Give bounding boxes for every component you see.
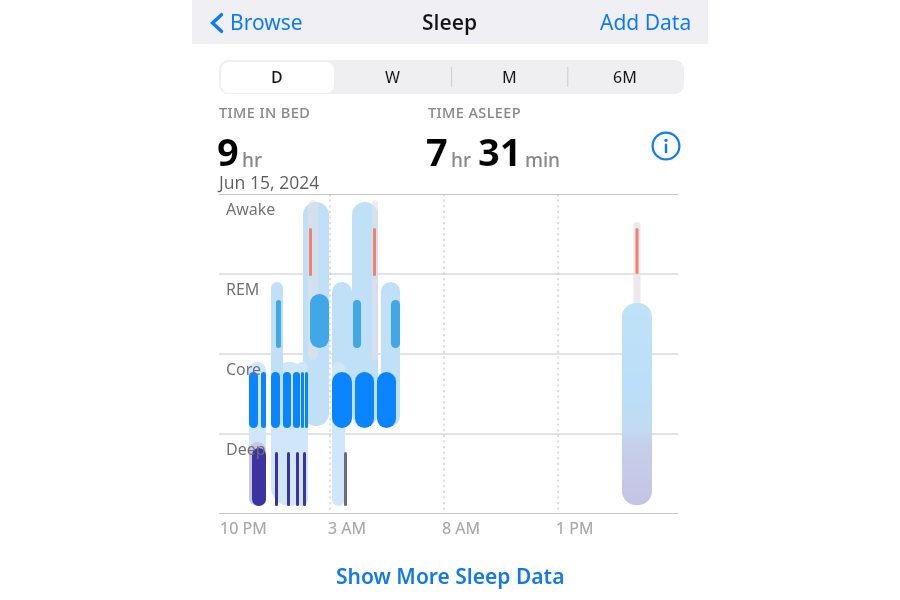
staticText: Add Data [600,8,692,37]
staticText: Deep [226,438,266,460]
staticText: Core [226,358,262,380]
button[interactable]: Add Data [594,2,698,43]
button[interactable]: Sleep stages chart [219,194,678,514]
staticText: Show More Sleep Data [336,562,565,591]
staticText: 8 AM [442,517,481,539]
staticText: hr [242,147,262,173]
staticText: TIME IN BED [219,102,311,122]
button[interactable]: Show More Sleep Data [0,558,900,594]
staticText: Awake [226,198,276,220]
staticText: M [502,66,517,88]
staticText: 3 AM [328,517,367,539]
button[interactable]: Information about sleep stages [650,130,682,162]
staticText: 10 PM [220,517,267,539]
button[interactable]: Browse [206,2,307,43]
staticText: REM [226,278,260,300]
staticText: D [271,66,283,88]
button[interactable]: 6M [567,60,683,94]
staticText: TIME ASLEEP [428,102,522,122]
staticText: 7 [426,125,448,177]
staticText: Browse [230,8,303,37]
staticText: min [525,147,561,173]
staticText: W [385,66,401,88]
staticText: 6M [613,66,637,88]
staticText: 9 [217,125,239,177]
staticText: Jun 15, 2024 [219,170,320,194]
button[interactable]: M [451,60,567,94]
staticText: hr [451,147,471,173]
staticText: 31 [478,125,522,177]
staticText: Sleep [422,8,478,37]
button[interactable]: D [219,60,335,94]
staticText: 1 PM [556,517,594,539]
button[interactable]: W [335,60,451,94]
